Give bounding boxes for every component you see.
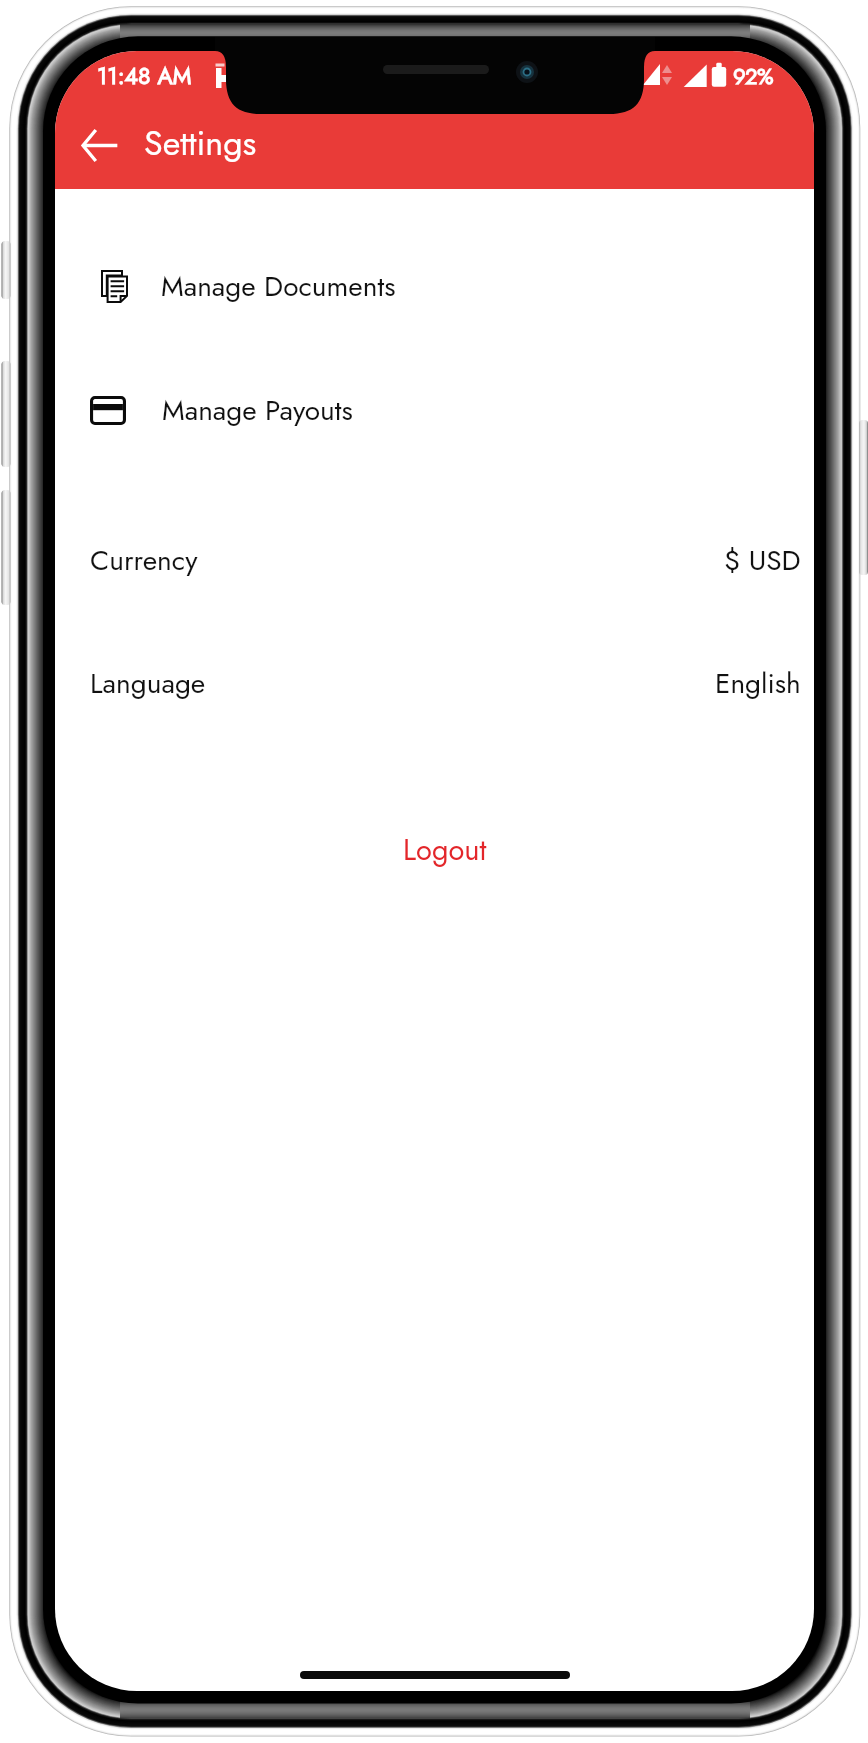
staticText: Logout [403, 829, 487, 871]
staticText: Settings [144, 119, 257, 168]
staticText: Currency [90, 540, 198, 580]
staticText: English [715, 663, 801, 703]
button[interactable]: Logout [380, 815, 510, 885]
button[interactable]: Currency [55, 525, 814, 595]
staticText: 11:48 AM [97, 59, 192, 92]
button[interactable]: Manage Documents [55, 251, 814, 321]
button[interactable]: Language [55, 648, 814, 718]
button[interactable]: Back [67, 113, 131, 177]
staticText: Language [90, 663, 206, 703]
staticText: 92% [733, 60, 773, 92]
staticText: Manage Payouts [162, 390, 353, 430]
staticText: $ USD [724, 540, 801, 580]
staticText: Manage Documents [161, 266, 396, 306]
button[interactable]: Manage Payouts [55, 375, 814, 445]
